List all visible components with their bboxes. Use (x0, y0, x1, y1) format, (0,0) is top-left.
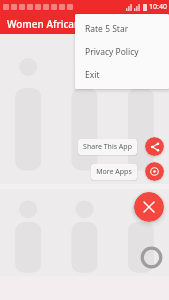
button[interactable]: More Apps (91, 164, 137, 180)
staticText: 10:40 (149, 2, 167, 12)
button[interactable]: Close menu (134, 192, 164, 222)
staticText: More Apps (96, 167, 132, 177)
staticText: Exit (85, 69, 100, 81)
staticText: Privacy Policy (85, 46, 139, 58)
button[interactable]: Share This App (78, 139, 137, 155)
other: Scroll indicator (140, 246, 163, 269)
button[interactable]: Privacy Policy (75, 40, 169, 63)
button[interactable]: More Apps (145, 162, 164, 181)
staticText: Rate 5 Star (85, 23, 129, 35)
staticText: Women African (7, 17, 81, 31)
button[interactable]: Share This App (145, 137, 164, 156)
button[interactable]: Exit (75, 63, 169, 86)
staticText: Share This App (83, 142, 132, 152)
button[interactable]: Rate 5 Star (75, 17, 169, 40)
